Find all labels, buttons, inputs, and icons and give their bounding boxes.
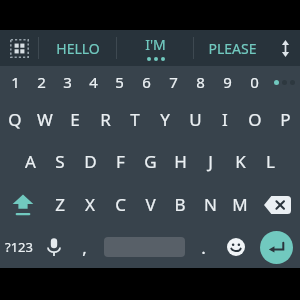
button[interactable]: 4 — [80, 66, 106, 98]
button[interactable]: 0 — [241, 66, 268, 98]
button[interactable]: J — [195, 140, 225, 183]
button[interactable]: HELLO — [39, 30, 116, 66]
staticText: M — [232, 193, 248, 216]
button[interactable]: . — [188, 226, 219, 268]
button[interactable]: D — [75, 140, 105, 183]
button[interactable]: K — [225, 140, 255, 183]
staticText: 1 — [11, 72, 20, 92]
staticText: J — [208, 150, 213, 173]
staticText: ?123 — [5, 238, 33, 256]
button[interactable]: G — [135, 140, 165, 183]
staticText: D — [84, 150, 97, 173]
staticText: K — [235, 150, 246, 173]
button[interactable]: B — [165, 183, 195, 226]
button[interactable]: PLEASE — [194, 30, 270, 66]
button[interactable]: 1 — [2, 66, 28, 98]
button[interactable]: H — [165, 140, 195, 183]
button[interactable]: I'M — [117, 30, 193, 66]
staticText: 8 — [196, 72, 205, 92]
staticText: Q — [8, 108, 22, 131]
button[interactable]: , — [69, 226, 100, 268]
staticText: , — [82, 236, 87, 259]
staticText: H — [174, 150, 187, 173]
button[interactable]: Enter — [253, 226, 300, 268]
button[interactable]: Z — [45, 183, 75, 226]
button[interactable]: O — [240, 98, 270, 140]
staticText: E — [70, 108, 80, 131]
button[interactable]: Q — [0, 98, 30, 140]
staticText: V — [145, 193, 156, 216]
button[interactable]: U — [180, 98, 210, 140]
button[interactable]: 8 — [187, 66, 214, 98]
button[interactable]: 7 — [160, 66, 187, 98]
staticText: W — [37, 108, 53, 131]
staticText: HELLO — [56, 39, 100, 58]
staticText: G — [144, 150, 157, 173]
staticText: I — [222, 108, 228, 131]
staticText: P — [280, 108, 291, 131]
button[interactable]: W — [30, 98, 60, 140]
staticText: L — [266, 150, 275, 173]
button[interactable]: X — [75, 183, 105, 226]
staticText: C — [115, 193, 126, 216]
staticText: 7 — [169, 72, 178, 92]
button[interactable]: 3 — [54, 66, 80, 98]
staticText: N — [204, 193, 217, 216]
button[interactable]: P — [270, 98, 300, 140]
staticText: U — [189, 108, 202, 131]
staticText: B — [174, 193, 186, 216]
staticText: 6 — [142, 72, 151, 92]
button[interactable]: Clipboard — [0, 30, 38, 66]
button[interactable]: F — [105, 140, 135, 183]
button[interactable]: Expand keyboard — [270, 30, 300, 66]
button[interactable]: Shift — [0, 183, 45, 226]
staticText: 0 — [250, 72, 259, 92]
staticText: 9 — [223, 72, 232, 92]
button[interactable]: Backspace — [255, 183, 300, 226]
button[interactable]: 9 — [214, 66, 241, 98]
staticText: Y — [160, 108, 170, 131]
staticText: O — [248, 108, 262, 131]
button[interactable]: Y — [150, 98, 180, 140]
staticText: A — [25, 150, 36, 173]
staticText: Z — [55, 193, 65, 216]
staticText: 4 — [89, 72, 98, 92]
button[interactable] — [100, 226, 188, 268]
staticText: PLEASE — [208, 39, 257, 58]
button[interactable]: Emoji — [219, 226, 253, 268]
button[interactable]: ?123 — [0, 226, 38, 268]
staticText: I'M — [145, 35, 166, 54]
button[interactable]: N — [195, 183, 225, 226]
button[interactable]: L — [255, 140, 285, 183]
staticText: R — [100, 108, 111, 131]
button[interactable]: 6 — [133, 66, 160, 98]
staticText: X — [85, 193, 95, 216]
button[interactable]: V — [135, 183, 165, 226]
button[interactable]: A — [15, 140, 45, 183]
button[interactable]: 2 — [28, 66, 54, 98]
button[interactable]: C — [105, 183, 135, 226]
staticText: 5 — [115, 72, 124, 92]
button[interactable]: I — [210, 98, 240, 140]
button[interactable]: E — [60, 98, 90, 140]
button[interactable]: 5 — [106, 66, 133, 98]
staticText: F — [116, 150, 125, 173]
staticText: 3 — [63, 72, 72, 92]
button[interactable]: S — [45, 140, 75, 183]
button[interactable]: M — [225, 183, 255, 226]
button[interactable]: Voice input — [38, 226, 69, 268]
staticText: . — [201, 236, 206, 259]
button[interactable]: R — [90, 98, 120, 140]
staticText: 2 — [37, 72, 46, 92]
button[interactable]: T — [120, 98, 150, 140]
staticText: S — [55, 150, 65, 173]
staticText: T — [130, 108, 140, 131]
